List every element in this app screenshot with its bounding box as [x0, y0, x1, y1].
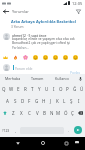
- button[interactable]: M: [55, 107, 62, 119]
- staticText: .: [68, 128, 70, 133]
- button[interactable]: Reaction: [23, 55, 28, 60]
- button[interactable]: C: [25, 107, 33, 119]
- staticText: Ü: [80, 86, 84, 92]
- staticText: ahmet12 · 5 saat önce: [12, 33, 47, 37]
- button[interactable]: Reaction: [53, 55, 58, 60]
- button[interactable]: W: [8, 83, 15, 95]
- staticText: I: [53, 86, 55, 92]
- staticText: M: [56, 110, 61, 116]
- staticText: R: [24, 86, 27, 92]
- button[interactable]: K: [54, 95, 61, 107]
- button[interactable]: Reaction: [73, 55, 78, 60]
- button[interactable]: U: [43, 83, 50, 95]
- staticText: A: [6, 98, 9, 104]
- button[interactable]: I: [50, 83, 57, 95]
- button[interactable]: X: [17, 107, 25, 119]
- button[interactable]: Z: [9, 107, 17, 119]
- button[interactable]: R: [22, 83, 29, 95]
- button[interactable]: V: [33, 107, 41, 119]
- button[interactable]: I: [75, 95, 82, 107]
- staticText: U: [45, 86, 49, 92]
- button[interactable]: ?123: [0, 124, 11, 136]
- button[interactable]: Comma: [11, 124, 20, 136]
- staticText: P: [66, 86, 69, 92]
- staticText: Parlatılsın...: [12, 46, 29, 50]
- staticText: T: [31, 86, 34, 92]
- button[interactable]: Kullanıcı: [50, 74, 75, 83]
- button[interactable]: Ş: [68, 95, 75, 107]
- staticText: F: [28, 98, 31, 104]
- button[interactable]: Ç: [69, 107, 76, 119]
- button[interactable]: Ğ: [71, 83, 78, 95]
- staticText: D: [21, 98, 25, 104]
- button[interactable]: O: [57, 83, 64, 95]
- staticText: Ş: [70, 98, 73, 104]
- staticText: başardılar, elinde ve yapayım olsa olsa …: [12, 37, 75, 45]
- staticText: H: [42, 98, 46, 104]
- staticText: Paylaş: [70, 70, 81, 75]
- button[interactable]: D: [19, 95, 26, 107]
- button[interactable]: F: [26, 95, 33, 107]
- button[interactable]: Reaction: [33, 55, 38, 60]
- staticText: Ö: [64, 110, 68, 116]
- button[interactable]: Ü: [78, 83, 85, 95]
- staticText: G: [35, 98, 39, 104]
- button[interactable]: Y: [36, 83, 43, 95]
- button[interactable]: Hide keyboard: [72, 137, 82, 147]
- staticText: E: [17, 86, 20, 92]
- staticText: Arka Arkaya Aykırılıkla Basketbol: [11, 19, 76, 24]
- button[interactable]: Reaction: [13, 55, 18, 60]
- staticText: Kullanıcı: [55, 76, 70, 81]
- button[interactable]: B: [41, 107, 48, 119]
- button[interactable]: L: [61, 95, 68, 107]
- staticText: ,: [15, 128, 17, 133]
- staticText: Ç: [71, 110, 74, 116]
- button[interactable]: A: [3, 95, 11, 107]
- staticText: Tamam: [31, 76, 44, 81]
- button[interactable]: Filter: [73, 6, 84, 17]
- staticText: B: [43, 110, 46, 116]
- staticText: Z: [12, 110, 15, 116]
- staticText: X: [20, 110, 23, 116]
- staticText: C: [28, 110, 31, 116]
- button[interactable]: Shift: [0, 107, 9, 119]
- button[interactable]: Send: [74, 126, 82, 134]
- button[interactable]: G: [33, 95, 40, 107]
- button[interactable]: Reaction: [3, 55, 8, 60]
- button[interactable]: Voice input: [75, 74, 85, 83]
- button[interactable]: Yorum ekle: [13, 64, 82, 71]
- button[interactable]: Q: [0, 83, 8, 95]
- button[interactable]: J: [47, 95, 54, 107]
- button[interactable]: T: [29, 83, 36, 95]
- button[interactable]: Back: [12, 137, 24, 149]
- staticText: Q: [2, 86, 6, 92]
- button[interactable]: Paylaş: [70, 70, 81, 75]
- button[interactable]: Back: [0, 6, 11, 17]
- button[interactable]: P: [64, 83, 71, 95]
- staticText: N: [50, 110, 54, 116]
- button[interactable]: H: [40, 95, 47, 107]
- staticText: O: [59, 86, 63, 92]
- button[interactable]: Tamam: [25, 74, 50, 83]
- staticText: V: [36, 110, 39, 116]
- button[interactable]: Ö: [62, 107, 69, 119]
- button[interactable]: Reaction: [63, 55, 68, 60]
- button[interactable]: Recents: [60, 137, 72, 149]
- button[interactable]: Merhaba: [0, 74, 25, 83]
- button[interactable]: Home: [37, 137, 49, 149]
- staticText: I: [78, 98, 80, 104]
- staticText: 12:05: [72, 1, 83, 6]
- staticText: S: [14, 98, 17, 104]
- button[interactable]: Reaction: [43, 55, 48, 60]
- staticText: Merhaba: [5, 76, 21, 81]
- button[interactable]: S: [11, 95, 19, 107]
- button[interactable]: Backspace: [76, 107, 85, 119]
- staticText: 3 Yorum: [11, 25, 24, 29]
- button[interactable]: E: [15, 83, 22, 95]
- staticText: ?123: [2, 128, 10, 133]
- staticText: Y: [38, 86, 41, 92]
- button[interactable]: N: [48, 107, 55, 119]
- staticText: K: [56, 98, 59, 104]
